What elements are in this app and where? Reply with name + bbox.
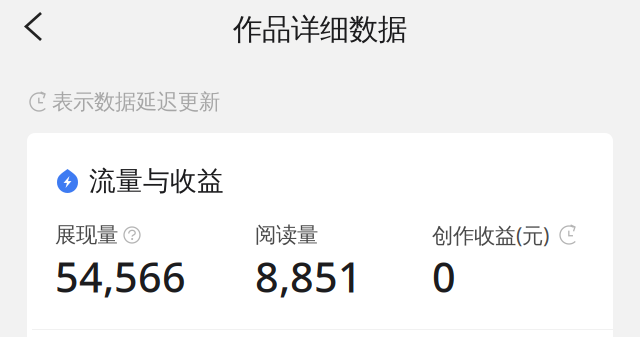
staticText: 创作收益(元): [432, 221, 549, 249]
staticText: 54,566: [55, 249, 186, 304]
staticText: 流量与收益: [89, 165, 224, 197]
staticText: 0: [432, 249, 456, 304]
staticText: 阅读量: [255, 222, 318, 248]
staticText: 展现量: [55, 222, 118, 248]
button[interactable]: Back: [0, 0, 59, 51]
staticText: 作品详细数据: [233, 11, 407, 47]
staticText: 表示数据延迟更新: [52, 89, 220, 115]
staticText: 8,851: [255, 249, 362, 304]
